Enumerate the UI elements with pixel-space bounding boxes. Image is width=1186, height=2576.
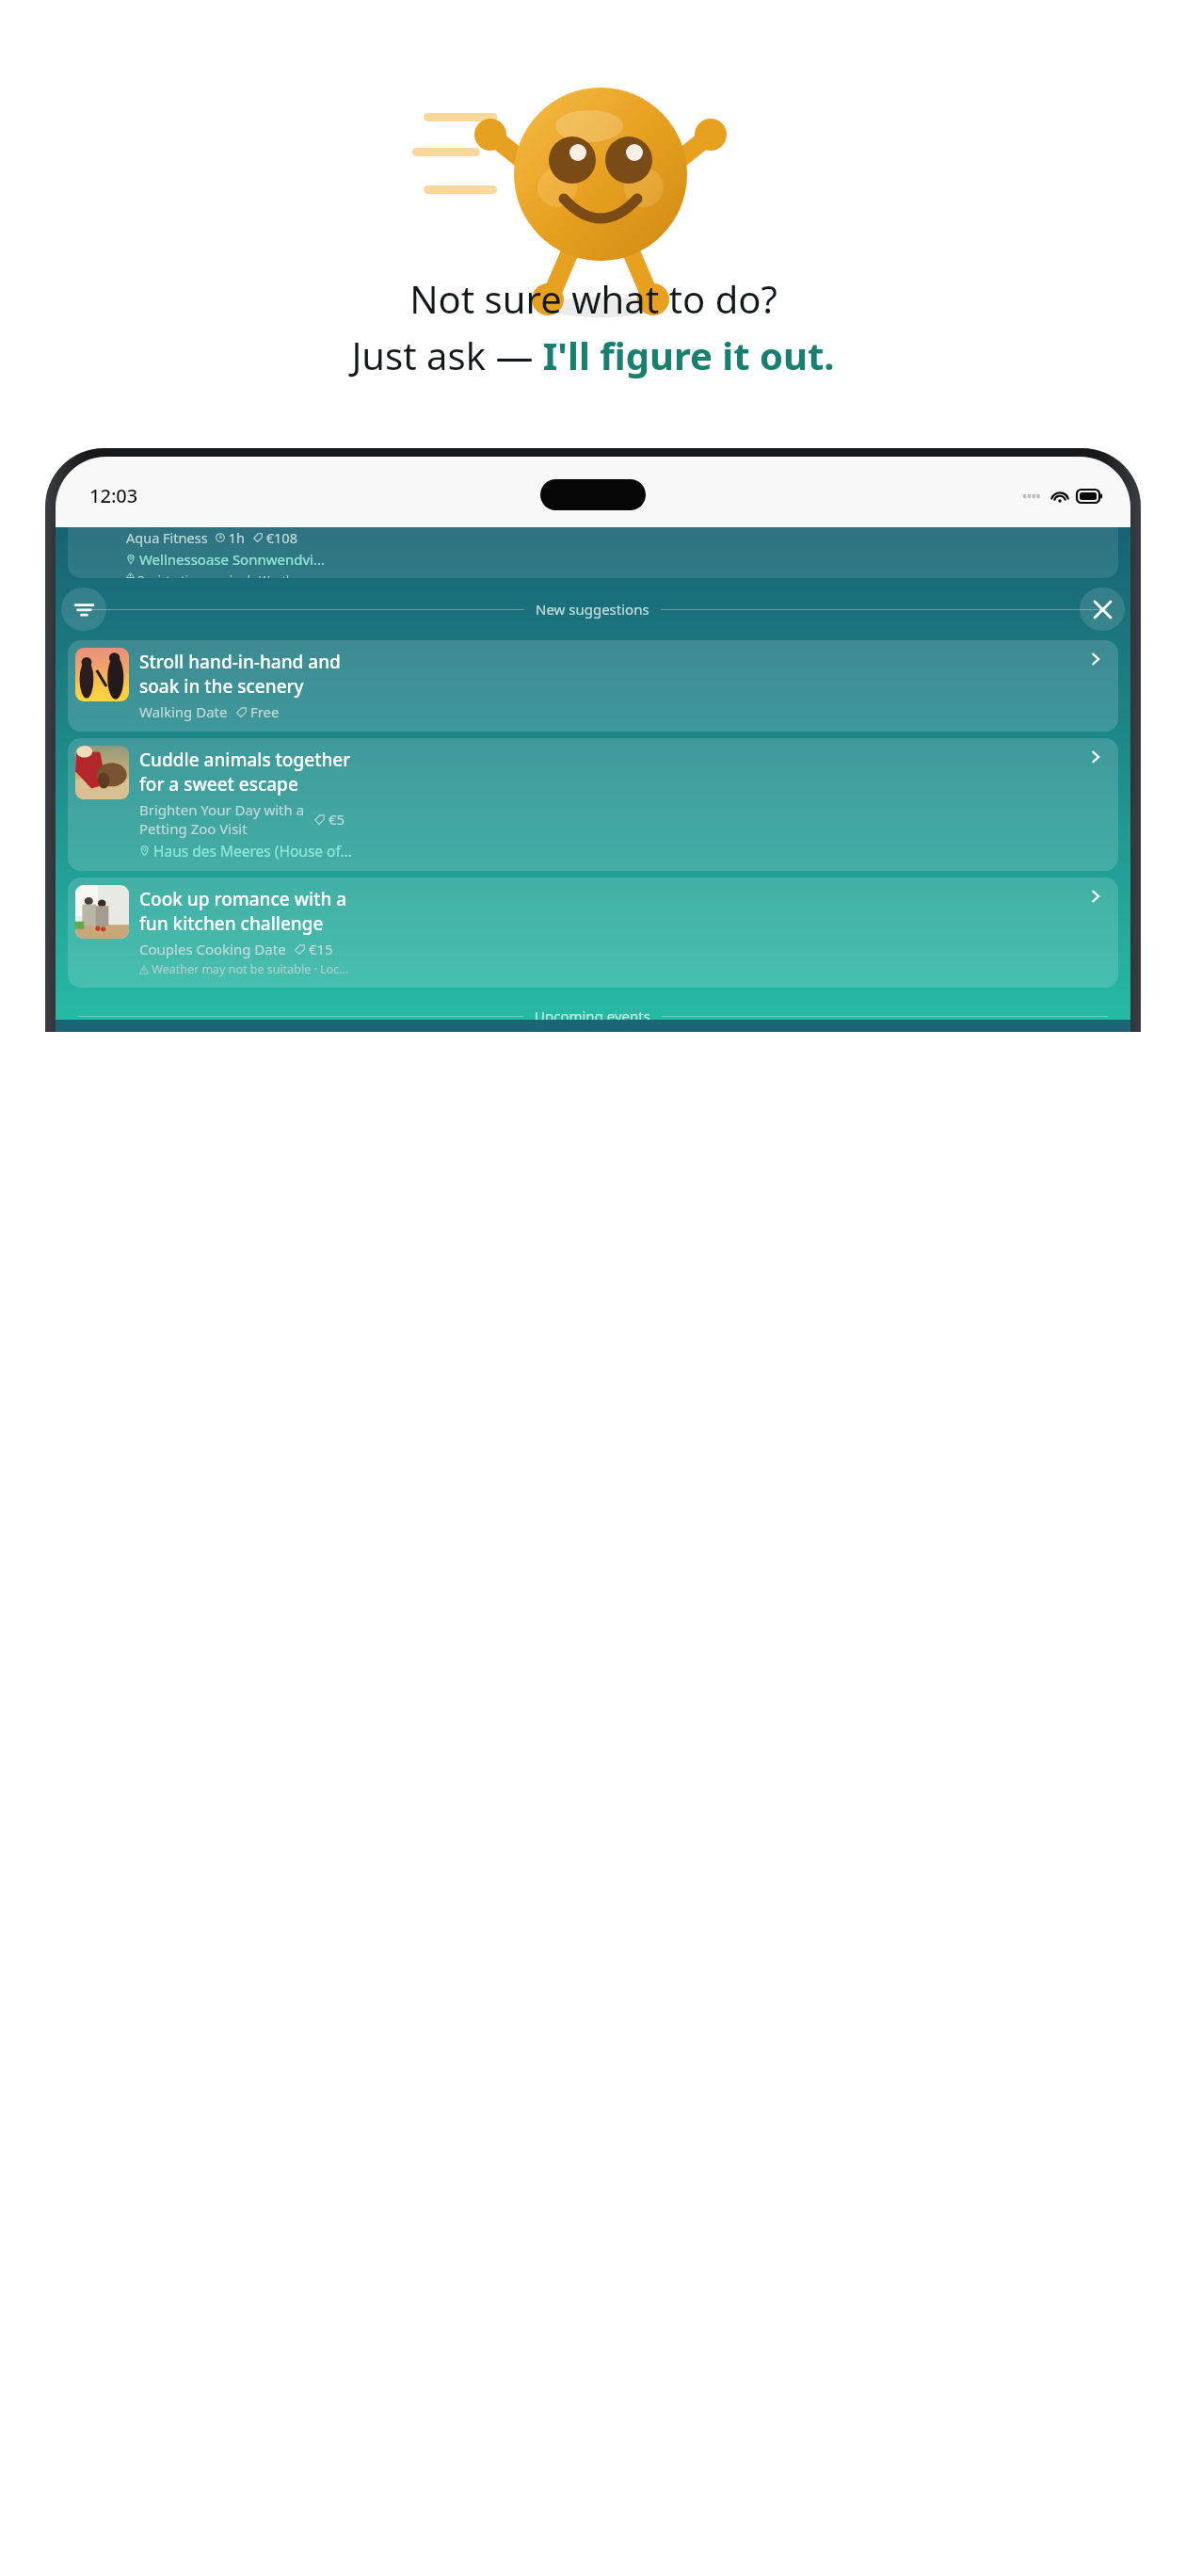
staticText: 12:03	[89, 483, 138, 508]
staticText: Not sure what to do?	[409, 273, 777, 324]
staticText: Haus des Meeres (House of…	[150, 841, 352, 861]
staticText: Couples Cooking Date	[139, 940, 286, 958]
staticText: Free	[247, 702, 280, 721]
staticText: Cuddle animals together for a sweet esca…	[139, 748, 351, 796]
button[interactable]: Close	[1080, 588, 1125, 631]
staticText: Weather may not be suitable · Loc…	[149, 961, 349, 977]
button[interactable]: Stroll hand-in-hand and soak in the scen…	[68, 640, 1118, 732]
staticText: Wellnessoase Sonnwendvi…	[136, 550, 325, 569]
staticText: Registration required · Weather ma…	[135, 572, 333, 578]
staticText: Cook up romance with a fun kitchen chall…	[139, 887, 347, 935]
button[interactable]: Cook up romance with a fun kitchen chall…	[68, 877, 1118, 988]
button[interactable]: Cuddle animals together for a sweet esca…	[68, 738, 1118, 871]
staticText: Aqua Fitness	[126, 528, 208, 547]
staticText: €5	[325, 810, 345, 829]
staticText: 1h	[225, 528, 246, 547]
staticText: Stroll hand-in-hand and soak in the scen…	[139, 650, 341, 698]
staticText: Brighten Your Day with a Petting Zoo Vis…	[139, 800, 305, 838]
button[interactable]: Filter	[61, 588, 106, 631]
staticText: Just ask — I'll figure it out.	[351, 330, 835, 380]
staticText: €15	[305, 940, 333, 958]
staticText: €108	[263, 528, 297, 547]
staticText: Walking Date	[139, 702, 228, 721]
staticText: Upcoming events	[535, 1006, 650, 1025]
staticText: New suggestions	[536, 600, 649, 619]
